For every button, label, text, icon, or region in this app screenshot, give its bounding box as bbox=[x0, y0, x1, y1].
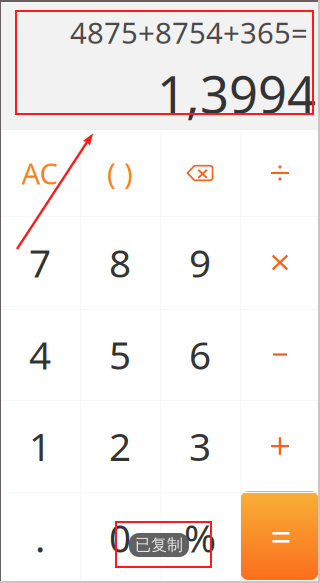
staticText: 已复制 bbox=[135, 535, 183, 555]
staticText: ( ) bbox=[107, 153, 133, 192]
button[interactable]: % bbox=[160, 492, 240, 583]
button[interactable]: Delete bbox=[160, 130, 240, 216]
staticText: 3 bbox=[189, 420, 211, 472]
button[interactable]: 1 bbox=[0, 400, 80, 492]
button[interactable]: All clear bbox=[0, 130, 80, 216]
staticText: 4 bbox=[29, 329, 51, 380]
button[interactable]: Operator bbox=[240, 400, 320, 492]
button[interactable]: Equals bbox=[240, 492, 320, 583]
staticText: 8 bbox=[109, 237, 131, 288]
button[interactable]: Parentheses bbox=[80, 130, 160, 216]
button[interactable]: 9 bbox=[160, 216, 240, 309]
button[interactable]: 4 bbox=[0, 309, 80, 400]
button[interactable]: . bbox=[0, 492, 80, 583]
staticText: 4875+8754+365= bbox=[70, 13, 308, 52]
button[interactable]: Divide bbox=[240, 130, 320, 216]
staticText: % bbox=[184, 512, 216, 563]
button[interactable]: 0 bbox=[80, 492, 160, 583]
button[interactable]: 5 bbox=[80, 309, 160, 400]
button[interactable]: Operator bbox=[240, 216, 320, 309]
staticText: 2 bbox=[109, 420, 131, 472]
staticText: 9 bbox=[189, 237, 211, 288]
staticText: 7 bbox=[29, 237, 51, 288]
button[interactable]: 6 bbox=[160, 309, 240, 400]
button[interactable]: 8 bbox=[80, 216, 160, 309]
staticText: 1 bbox=[29, 420, 51, 472]
staticText: AC bbox=[21, 153, 58, 192]
staticText: 6 bbox=[189, 329, 211, 380]
staticText: 0 bbox=[109, 512, 131, 563]
button[interactable]: 7 bbox=[0, 216, 80, 309]
button[interactable]: 2 bbox=[80, 400, 160, 492]
staticText: . bbox=[35, 512, 45, 563]
staticText: 5 bbox=[109, 329, 131, 380]
button[interactable]: Operator bbox=[240, 309, 320, 400]
button[interactable]: 3 bbox=[160, 400, 240, 492]
staticText: 1,3994 bbox=[157, 60, 316, 127]
